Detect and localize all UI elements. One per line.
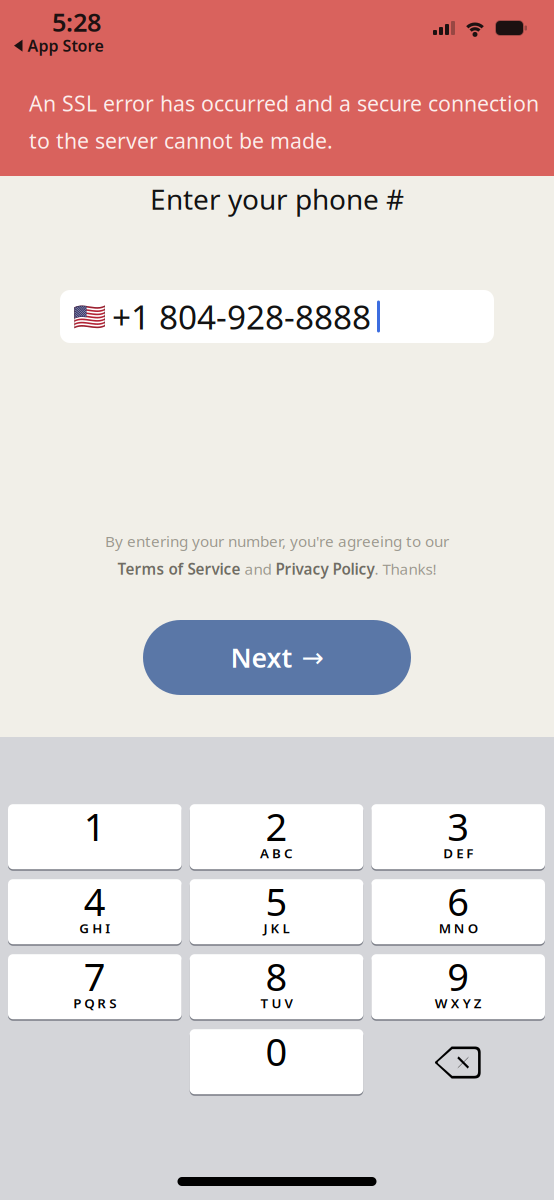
button[interactable]: 8 [190,955,363,1020]
staticText: 6 [447,875,469,927]
staticText: J K L [263,919,289,937]
staticText: 5:28 [52,5,101,39]
staticText: 3 [447,800,469,852]
button[interactable]: 7 [8,955,182,1020]
staticText: Next [230,640,292,675]
staticText: Terms of Service [117,558,240,579]
staticText: 1 [84,800,106,852]
button[interactable]: Privacy Policy [275,558,374,579]
staticText: 5 [265,875,287,927]
button[interactable]: 3 [371,805,545,870]
staticText: A B C [260,844,293,862]
staticText: 2 [265,800,287,852]
button[interactable]: 2 [190,805,363,870]
staticText: . Thanks! [374,558,436,579]
staticText: G H I [79,919,110,937]
button[interactable]: Next [143,620,411,695]
button[interactable]: Terms of Service [117,558,240,579]
staticText: P Q R S [73,994,116,1012]
button[interactable]: 9 [371,955,545,1020]
staticText: to the server cannot be made. [29,126,333,155]
staticText: App Store [27,35,103,56]
button[interactable]: Delete [371,1030,545,1095]
staticText: W X Y Z [435,994,482,1012]
staticText: 0 [265,1025,287,1077]
staticText: → [301,642,323,673]
staticText: An SSL error has occurred and a secure c… [29,89,539,117]
staticText: Privacy Policy [275,558,374,579]
staticText: and [240,558,275,579]
staticText: 9 [447,950,469,1002]
button[interactable]: 5 [190,880,363,945]
button[interactable]: 0 [190,1030,363,1095]
staticText: 8 [265,950,287,1002]
button[interactable]: 4 [8,880,182,945]
staticText: 4 [84,875,106,927]
button[interactable]: 6 [371,880,545,945]
staticText: D E F [443,844,473,862]
button[interactable]: App Store [0,0,103,56]
staticText: 7 [84,950,106,1002]
staticText: 🇺🇸 [73,301,106,332]
staticText: T U V [260,994,292,1012]
staticText: M N O [439,919,478,937]
staticText: Enter your phone # [150,180,404,218]
button[interactable]: 1 [8,805,182,870]
staticText: By entering your number, you're agreeing… [105,531,449,551]
staticText: +1 804-928-8888 [112,294,371,339]
